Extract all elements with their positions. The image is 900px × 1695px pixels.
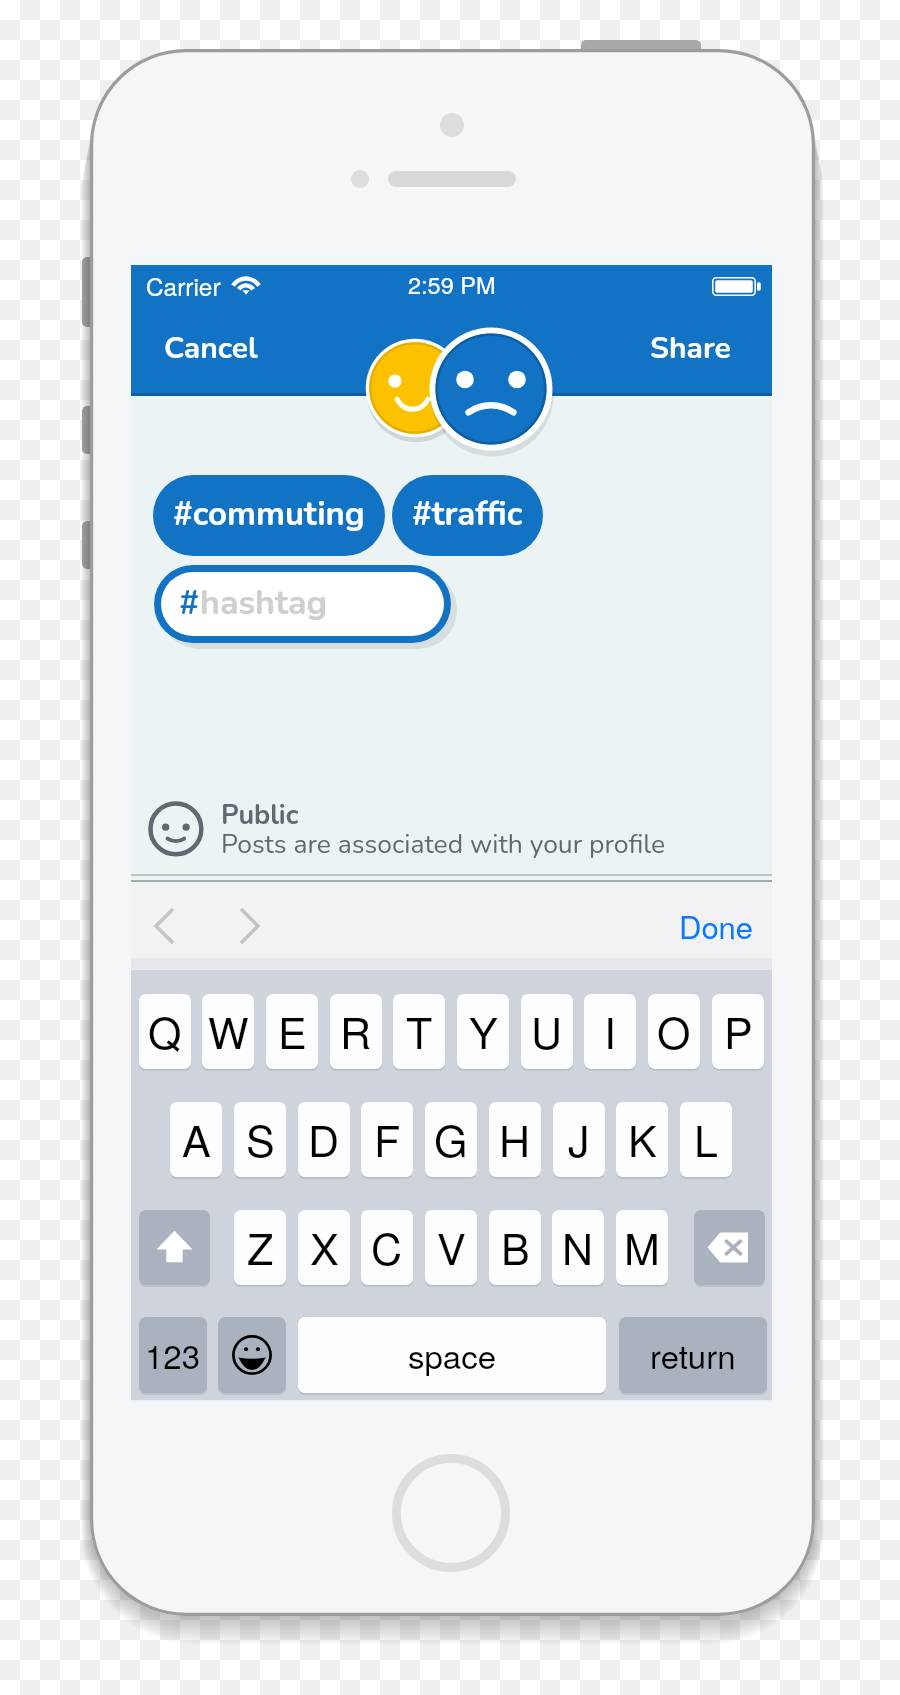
- staticText: R: [340, 1000, 372, 1062]
- button[interactable]: #: [161, 572, 444, 636]
- button[interactable]: E: [266, 994, 318, 1069]
- button[interactable]: W: [202, 994, 254, 1069]
- staticText: S: [246, 1108, 275, 1170]
- button[interactable]: K: [616, 1102, 668, 1177]
- button[interactable]: Z: [234, 1210, 286, 1285]
- staticText: Y: [469, 1000, 498, 1062]
- staticText: #commuting: [173, 492, 365, 537]
- staticText: O: [657, 1000, 691, 1062]
- staticText: I: [604, 1000, 616, 1062]
- button[interactable]: G: [425, 1102, 477, 1177]
- button[interactable]: 123: [139, 1317, 207, 1393]
- button[interactable]: Public: [131, 783, 772, 877]
- staticText: K: [628, 1108, 657, 1170]
- staticText: 123: [145, 1331, 201, 1378]
- staticText: L: [694, 1108, 718, 1170]
- button[interactable]: L: [680, 1102, 732, 1177]
- button[interactable]: P: [712, 994, 764, 1069]
- staticText: #traffic: [412, 492, 523, 537]
- button[interactable]: Q: [139, 994, 191, 1069]
- staticText: 2:59 PM: [408, 267, 496, 301]
- button[interactable]: B: [489, 1210, 541, 1285]
- button[interactable]: Cancel: [164, 328, 258, 369]
- staticText: X: [310, 1216, 339, 1278]
- button[interactable]: D: [298, 1102, 350, 1177]
- button[interactable]: Emoji keyboard: [218, 1317, 286, 1393]
- button[interactable]: N: [552, 1210, 604, 1285]
- button[interactable]: R: [330, 994, 382, 1069]
- staticText: A: [182, 1108, 211, 1170]
- staticText: Z: [247, 1216, 274, 1278]
- staticText: J: [568, 1108, 590, 1170]
- staticText: space: [408, 1331, 497, 1378]
- staticText: D: [308, 1108, 340, 1170]
- staticText: B: [501, 1216, 530, 1278]
- staticText: T: [406, 1000, 433, 1062]
- button[interactable]: Delete: [694, 1210, 765, 1285]
- staticText: V: [437, 1216, 466, 1278]
- button[interactable]: J: [553, 1102, 605, 1177]
- button[interactable]: U: [521, 994, 573, 1069]
- button[interactable]: S: [234, 1102, 286, 1177]
- staticText: E: [278, 1000, 307, 1062]
- button[interactable]: C: [361, 1210, 413, 1285]
- staticText: #: [179, 580, 200, 626]
- button[interactable]: #commuting: [153, 475, 385, 556]
- button[interactable]: T: [393, 994, 445, 1069]
- staticText: Public: [221, 797, 299, 834]
- button[interactable]: return: [619, 1317, 767, 1393]
- staticText: M: [624, 1216, 660, 1278]
- button[interactable]: M: [616, 1210, 668, 1285]
- staticText: W: [208, 1000, 249, 1062]
- staticText: N: [562, 1216, 594, 1278]
- button[interactable]: Done: [679, 903, 754, 947]
- button[interactable]: Previous field: [143, 904, 187, 948]
- staticText: H: [499, 1108, 531, 1170]
- button[interactable]: F: [361, 1102, 413, 1177]
- button[interactable]: H: [489, 1102, 541, 1177]
- staticText: Carrier: [146, 268, 221, 303]
- button[interactable]: I: [584, 994, 636, 1069]
- button[interactable]: A: [170, 1102, 222, 1177]
- staticText: G: [434, 1108, 468, 1170]
- staticText: C: [371, 1216, 403, 1278]
- staticText: return: [650, 1331, 736, 1378]
- staticText: U: [531, 1000, 563, 1062]
- button[interactable]: Next field: [227, 904, 271, 948]
- button[interactable]: #traffic: [392, 475, 543, 556]
- staticText: Posts are associated with your profile: [221, 826, 666, 862]
- staticText: P: [724, 1000, 753, 1062]
- button[interactable]: Y: [457, 994, 509, 1069]
- button[interactable]: O: [648, 994, 700, 1069]
- button[interactable]: Shift: [139, 1210, 210, 1285]
- button[interactable]: Share: [650, 328, 731, 369]
- button[interactable]: space: [298, 1317, 606, 1393]
- staticText: Q: [148, 1000, 182, 1062]
- button[interactable]: X: [298, 1210, 350, 1285]
- staticText: hashtag: [200, 580, 328, 626]
- staticText: F: [374, 1108, 401, 1170]
- button[interactable]: V: [425, 1210, 477, 1285]
